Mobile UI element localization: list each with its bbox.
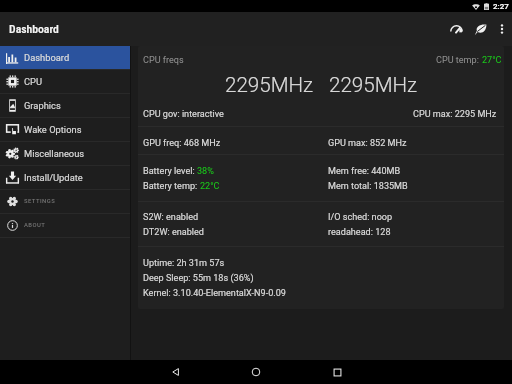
- staticText: Uptime: 2h 31m 57s: [143, 258, 225, 269]
- staticText: 2:27: [493, 2, 509, 11]
- staticText: Mem total: 1835MB: [328, 181, 408, 192]
- staticText: DT2W: enabled: [143, 227, 204, 238]
- staticText: CPU gov: interactive: [143, 109, 224, 120]
- staticText: Mem free: 440MB: [328, 166, 401, 177]
- button[interactable]: Back: [164, 360, 188, 384]
- staticText: S2W: enabled: [143, 212, 199, 223]
- staticText: SETTINGS: [24, 198, 56, 205]
- button[interactable]: Wake Options: [0, 118, 131, 141]
- staticText: CPU freqs: [143, 55, 184, 66]
- staticText: CPU temp:: [436, 55, 482, 66]
- button[interactable]: Recent apps: [325, 360, 349, 384]
- staticText: Deep Sleep: 55m 18s (36%): [143, 273, 254, 284]
- staticText: 22°C: [200, 181, 220, 192]
- button[interactable]: Install/Update: [0, 166, 131, 189]
- staticText: 2295MHz: [329, 73, 418, 97]
- button[interactable]: CPU: [0, 70, 131, 93]
- button[interactable]: Battery saver: [468, 17, 492, 41]
- staticText: ABOUT: [24, 222, 46, 229]
- button[interactable]: Miscellaneous: [0, 142, 131, 165]
- button[interactable]: Home: [244, 360, 268, 384]
- staticText: Battery temp:: [143, 181, 200, 192]
- staticText: Dashboard: [9, 22, 59, 36]
- staticText: Graphics: [24, 100, 61, 111]
- staticText: Wake Options: [24, 124, 82, 135]
- staticText: 38%: [197, 166, 214, 177]
- staticText: 2295MHz: [225, 73, 314, 97]
- button[interactable]: Dashboard: [0, 46, 131, 69]
- staticText: Kernel: 3.10.40-ElementalX-N9-0.09: [143, 288, 286, 299]
- staticText: I/O sched: noop: [328, 212, 393, 223]
- staticText: CPU max: 2295 MHz: [413, 109, 497, 120]
- staticText: readahead: 128: [328, 227, 391, 238]
- button[interactable]: ABOUT: [0, 214, 131, 237]
- button[interactable]: More options: [492, 19, 512, 39]
- staticText: Dashboard: [24, 52, 70, 63]
- staticText: Miscellaneous: [24, 148, 85, 159]
- button[interactable]: SETTINGS: [0, 190, 131, 213]
- button[interactable]: Performance profile: [444, 17, 468, 41]
- button[interactable]: Graphics: [0, 94, 131, 117]
- staticText: Battery level:: [143, 166, 197, 177]
- staticText: CPU: [24, 76, 43, 87]
- staticText: Install/Update: [24, 172, 83, 183]
- staticText: GPU freq: 468 MHz: [143, 138, 221, 149]
- staticText: GPU max: 852 MHz: [328, 138, 407, 149]
- staticText: 27°C: [482, 55, 502, 66]
